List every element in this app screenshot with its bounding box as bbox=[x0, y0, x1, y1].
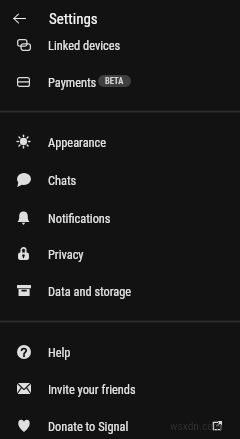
staticText: Notifications bbox=[48, 211, 111, 226]
staticText: Payments bbox=[48, 75, 97, 90]
button[interactable]: Notifications bbox=[0, 199, 240, 236]
staticText: Linked devices bbox=[48, 38, 121, 53]
button[interactable]: Back bbox=[0, 3, 38, 34]
staticText: BETA bbox=[105, 76, 124, 86]
staticText: Chats bbox=[48, 173, 77, 188]
staticText: Invite your friends bbox=[48, 382, 136, 397]
button[interactable]: Payments bbox=[0, 63, 240, 100]
button[interactable]: Settings title bar bbox=[0, 3, 240, 34]
button[interactable]: Privacy bbox=[0, 235, 240, 272]
staticText: Settings bbox=[49, 10, 98, 28]
button[interactable]: Help bbox=[0, 333, 240, 370]
button[interactable]: Chats bbox=[0, 161, 240, 198]
button[interactable]: Data and storage bbox=[0, 272, 240, 309]
button[interactable]: Payments beta bbox=[98, 75, 131, 87]
staticText: wsxdn.com bbox=[170, 419, 222, 432]
button[interactable]: Invite your friends bbox=[0, 370, 240, 407]
staticText: Data and storage bbox=[48, 284, 132, 299]
staticText: Appearance bbox=[48, 135, 107, 150]
button[interactable]: Appearance bbox=[0, 123, 240, 160]
staticText: Help bbox=[48, 345, 71, 360]
button[interactable]: Donate to Signal bbox=[0, 407, 240, 439]
staticText: Donate to Signal bbox=[48, 419, 129, 434]
staticText: Privacy bbox=[48, 247, 84, 262]
button[interactable]: Linked devices bbox=[0, 26, 240, 63]
button[interactable]: Open donate page in browser bbox=[205, 413, 229, 438]
